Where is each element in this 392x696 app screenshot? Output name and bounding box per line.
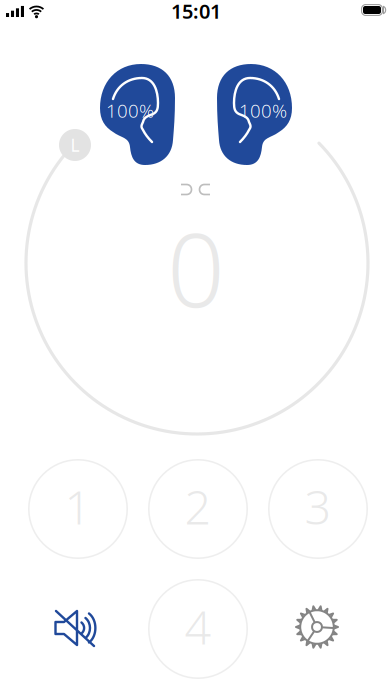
staticText: 100% — [106, 98, 154, 123]
staticText: 100% — [239, 98, 287, 123]
button[interactable]: 1 — [28, 459, 128, 559]
button[interactable]: 4 — [148, 579, 248, 679]
button[interactable]: 3 — [268, 459, 368, 559]
staticText: 2 — [184, 475, 211, 537]
staticText: L — [70, 133, 79, 156]
staticText: 3 — [304, 475, 331, 537]
button[interactable]: Settings — [296, 606, 338, 648]
staticText: 0 — [167, 201, 225, 335]
staticText: 4 — [184, 595, 211, 657]
button[interactable]: Mute — [54, 608, 96, 648]
staticText: 15:01 — [171, 0, 221, 24]
button[interactable]: 2 — [148, 459, 248, 559]
staticText: 1 — [64, 475, 91, 537]
